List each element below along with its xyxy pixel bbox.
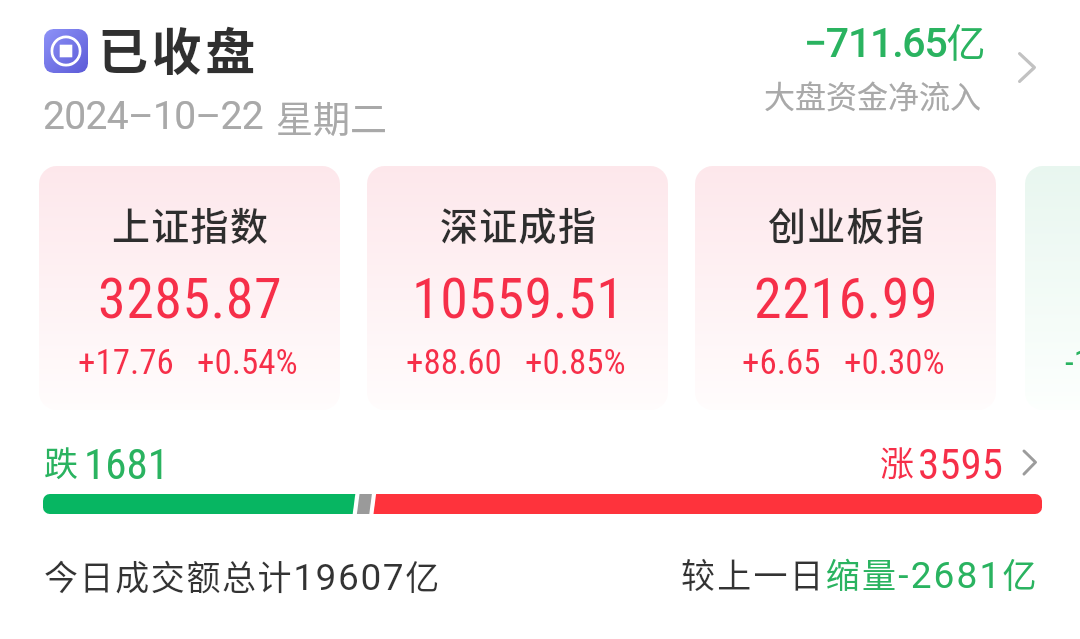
staticText: 深证成指 xyxy=(440,196,598,251)
staticText: −711.65亿 xyxy=(804,12,986,68)
staticText: 2024–10–22 xyxy=(43,93,264,139)
staticText: 跌 xyxy=(44,437,78,486)
staticText: 创业板指 xyxy=(768,196,926,251)
staticText: +0.30% xyxy=(844,342,945,383)
staticText: 3285.87 xyxy=(98,266,283,332)
button[interactable]: −711.65亿 xyxy=(760,9,986,109)
staticText: 星期二 xyxy=(276,90,387,144)
staticText: +6.65 xyxy=(742,342,821,383)
staticText: +0.54% xyxy=(197,342,298,383)
staticText: +17.76 xyxy=(78,342,174,383)
button[interactable]: 涨跌家数详情 xyxy=(1014,441,1056,483)
button[interactable]: 科创50 xyxy=(1025,166,1080,410)
button[interactable]: 市场状态 xyxy=(44,29,88,73)
button[interactable]: 资金流向详情 xyxy=(1010,44,1056,90)
staticText: -11.86 xyxy=(1065,342,1080,383)
button[interactable]: 今日成交额总计19607亿 xyxy=(44,551,441,600)
button[interactable] xyxy=(43,494,1042,514)
staticText: 10559.51 xyxy=(412,266,625,332)
staticText: 1681 xyxy=(84,439,169,489)
staticText: 2216.99 xyxy=(754,266,939,332)
button[interactable]: 较上一日缩量-2681亿 xyxy=(681,549,1039,598)
button[interactable]: 创业板指 xyxy=(695,166,996,410)
staticText: 上证指数 xyxy=(112,196,270,251)
button[interactable]: 上证指数 xyxy=(39,166,340,410)
staticText: 3595 xyxy=(918,439,1003,489)
staticText: +88.60 xyxy=(406,342,502,383)
staticText: 大盘资金净流入 xyxy=(764,72,981,117)
button[interactable]: 已收盘 xyxy=(98,12,259,84)
staticText: +0.85% xyxy=(525,342,626,383)
button[interactable]: 深证成指 xyxy=(367,166,668,410)
staticText: 涨 xyxy=(880,437,914,486)
